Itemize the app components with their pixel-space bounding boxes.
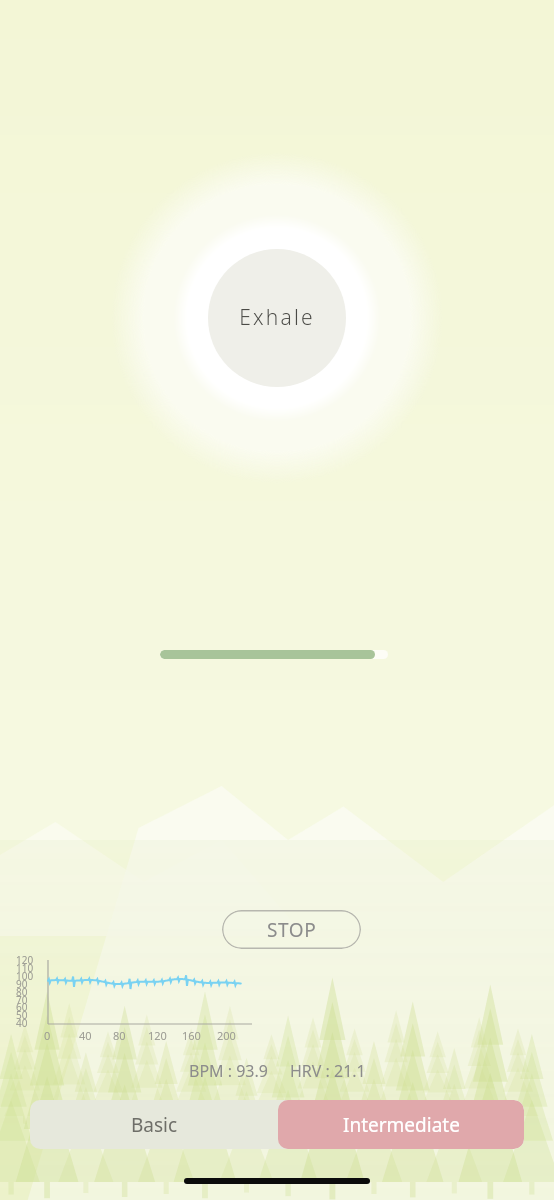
staticText: 60 [16,1000,28,1014]
staticText: 0 [44,1028,51,1043]
staticText: 120 [148,1028,167,1043]
staticText: 120 [16,953,34,967]
staticText: Exhale [239,303,315,332]
button[interactable]: Intermediate [278,1100,524,1149]
staticText: 80 [113,1028,126,1043]
staticText: 40 [79,1028,92,1043]
button[interactable]: Basic [30,1100,278,1149]
staticText: 110 [16,961,34,975]
staticText: STOP [267,917,317,943]
button[interactable]: STOP [222,910,361,949]
staticText: Intermediate [343,1112,460,1138]
staticText: 100 [16,969,34,983]
staticText: 50 [16,1008,28,1022]
staticText: 90 [16,977,28,991]
staticText: 40 [16,1016,28,1030]
staticText: HRV : 21.1 [290,1060,366,1082]
staticText: 70 [16,993,28,1007]
staticText: 80 [16,985,28,999]
staticText: 160 [182,1028,201,1043]
staticText: BPM : 93.9 [189,1060,268,1082]
staticText: 200 [217,1028,236,1043]
staticText: Basic [131,1112,178,1138]
other: Home indicator [184,1178,370,1184]
